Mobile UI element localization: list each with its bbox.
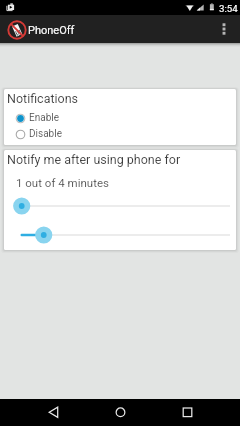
staticText: Notify me after using phone for: [7, 152, 181, 167]
staticText: Disable: [29, 128, 62, 140]
button[interactable]: Back: [29, 399, 77, 426]
staticText: 1 out of 4 minutes: [16, 176, 109, 189]
button[interactable]: PhoneOff, open navigation: [0, 15, 28, 43]
staticText: PhoneOff: [28, 24, 75, 37]
button[interactable]: Disable: [4, 126, 236, 142]
staticText: 3:54: [219, 3, 238, 14]
button[interactable]: Duration slider: [4, 197, 236, 215]
staticText: Notifications: [7, 91, 79, 106]
button[interactable]: Recent apps: [163, 399, 211, 426]
button[interactable]: Home: [96, 399, 144, 426]
button[interactable]: Enable: [4, 110, 236, 126]
button[interactable]: Duration slider: [4, 226, 236, 244]
staticText: Enable: [29, 112, 59, 124]
button[interactable]: More options: [211, 15, 237, 43]
